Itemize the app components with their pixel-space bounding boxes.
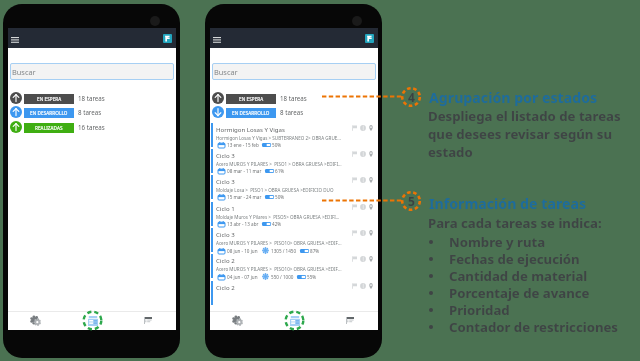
button[interactable]: Buscar [212,63,376,80]
button[interactable]: REALIZADAS [8,121,176,134]
button[interactable]: Reports [120,311,176,330]
button[interactable]: Resources [8,311,64,330]
staticText: Despliega el listado de tareas que desee… [428,107,627,161]
staticText: 4 [408,89,415,105]
staticText: Buscar [12,67,36,77]
staticText: EN DESARROLLO [30,110,68,116]
staticText: Prioridad [449,301,510,318]
staticText: 8 tareas [78,108,102,116]
staticText: 18 tareas [280,94,307,102]
staticText: 13 ene - 15 feb [227,142,259,148]
staticText: Acero MUROS Y PILARES > PISO10> OBRA GRU… [216,266,342,272]
button[interactable]: EN DESARROLLO [8,106,176,119]
button[interactable]: Tasks [266,311,322,330]
staticText: Información de tareas [429,194,587,213]
staticText: Ciclo 3 [216,230,235,238]
button[interactable]: Application logo [163,34,172,43]
staticText: Cantidad de material [449,267,588,284]
button[interactable]: EN ESPERA [210,92,378,105]
staticText: 15 mar - 24 mar [227,194,262,200]
staticText: Porcentaje de avance [449,284,590,301]
staticText: Nombre y ruta [449,233,546,250]
staticText: 61% [275,168,285,174]
button[interactable]: Ciclo 2 [210,254,378,281]
staticText: Ciclo 2 [216,283,235,291]
staticText: Hormigon Losas Y Vigas [216,125,285,133]
staticText: 16 tareas [78,123,105,131]
button[interactable]: Tasks [64,311,120,330]
staticText: Ciclo 1 [216,204,235,212]
button[interactable]: Open navigation menu [213,37,221,43]
staticText: Para cada tareas se indica: [428,214,602,232]
staticText: Ciclo 3 [216,177,235,185]
staticText: 1305 / 1450 [271,248,297,254]
button[interactable]: Ciclo 1 [210,202,378,228]
staticText: Fechas de ejecución [449,250,580,267]
staticText: 550 / 1000 [271,274,294,280]
staticText: EN ESPERA [37,96,62,102]
button[interactable]: EN DESARROLLO [210,106,378,119]
staticText: Acero MUROS Y PILARES > PISO10> OBRA GRU… [216,240,342,246]
staticText: 04 jun - 07 jun [227,274,258,280]
staticText: 42% [272,221,282,227]
button[interactable]: Application logo [365,34,374,43]
staticText: 50% [272,142,282,148]
staticText: 50% [275,194,285,200]
staticText: 08 mar - 11 mar [227,168,262,174]
button[interactable]: EN ESPERA [8,92,176,105]
staticText: Hormigon Losas Y Vigas > SUBTERRANEO 2> … [216,135,342,141]
staticText: 8 tareas [280,108,304,116]
button[interactable]: Ciclo 2 [210,281,378,307]
staticText: 18 tareas [78,94,105,102]
staticText: REALIZADAS [35,125,63,131]
button[interactable]: Resources [210,311,266,330]
staticText: Ciclo 3 [216,151,235,159]
button[interactable]: Buscar [10,63,174,80]
staticText: Moldaje Muros Y Pilares > PISO5> OBRA GR… [216,214,342,220]
staticText: 55% [307,274,317,280]
staticText: 5 [408,193,415,209]
staticText: 87% [310,248,320,254]
staticText: 13 abr - 13 abr [227,221,259,227]
staticText: Buscar [214,67,238,77]
button[interactable]: Open navigation menu [11,37,19,43]
staticText: Agrupación por estados [429,88,598,107]
button[interactable]: Ciclo 3 [210,228,378,254]
button[interactable]: Reports [322,311,378,330]
button[interactable]: Hormigon Losas Y Vigas [210,123,378,149]
staticText: Acero MUROS Y PILARES > PISO1 > OBRA GRU… [216,161,342,167]
button[interactable]: Ciclo 3 [210,149,378,175]
staticText: 08 jun - 10 jun [227,248,258,254]
staticText: Contador de restricciones [449,318,618,335]
staticText: EN ESPERA [239,96,264,102]
staticText: EN DESARROLLO [232,110,270,116]
staticText: Ciclo 2 [216,256,235,264]
button[interactable]: Ciclo 3 [210,175,378,202]
staticText: Moldaje Losa > PISO1 > OBRA GRUESA >EDIF… [216,187,342,193]
